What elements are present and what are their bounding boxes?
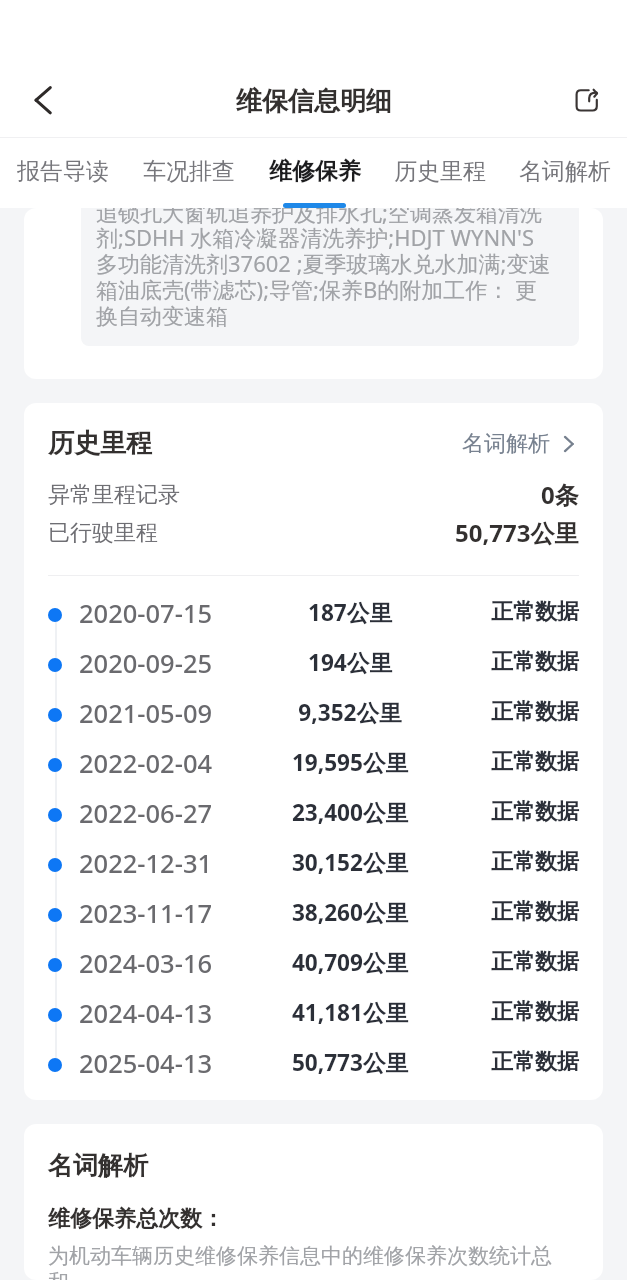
staticText: 车况排查: [143, 157, 235, 186]
staticText: 维修保养: [269, 157, 361, 186]
staticText: 2024-03-16: [79, 946, 213, 981]
staticText: 2022-02-04: [79, 746, 213, 781]
staticText: 2022-06-27: [79, 796, 213, 831]
staticText: 0条: [541, 478, 579, 511]
staticText: 2022-12-31: [79, 846, 213, 881]
staticText: 正常数据: [491, 798, 579, 826]
staticText: 2020-07-15: [79, 596, 213, 631]
staticText: 2025-04-13: [79, 1046, 213, 1081]
staticText: 正常数据: [491, 1048, 579, 1076]
staticText: 正常数据: [491, 748, 579, 776]
button[interactable]: 报告导读: [0, 138, 126, 208]
staticText: 维保信息明细: [236, 85, 392, 118]
staticText: 名词解析: [462, 430, 550, 458]
staticText: 正常数据: [491, 598, 579, 626]
staticText: 正常数据: [491, 848, 579, 876]
staticText: 194公里: [240, 647, 460, 678]
staticText: 正常数据: [491, 898, 579, 926]
staticText: 2024-04-13: [79, 996, 213, 1031]
staticText: 50,773公里: [240, 1047, 460, 1078]
staticText: 41,181公里: [240, 997, 460, 1028]
staticText: 名词解析: [48, 1150, 148, 1181]
staticText: 2023-11-17: [79, 896, 213, 931]
staticText: 正常数据: [491, 998, 579, 1026]
staticText: 40,709公里: [240, 947, 460, 978]
staticText: 名词解析: [519, 157, 611, 186]
button[interactable]: 维修保养: [252, 138, 377, 208]
staticText: 2021-05-09: [79, 696, 213, 731]
staticText: 追锁孔大窗轨追养护及排水孔;空调蒸发箱清洗剂;SDHH 水箱冷凝器清洗养护;HD…: [96, 208, 552, 330]
staticText: 异常里程记录: [48, 481, 180, 509]
staticText: 9,352公里: [240, 697, 460, 728]
staticText: 19,595公里: [240, 747, 460, 778]
staticText: 为机动车辆历史维修保养信息中的维修保养次数统计总和: [48, 1243, 569, 1280]
button[interactable]: 名词解析: [502, 138, 627, 208]
staticText: 历史里程: [48, 427, 152, 460]
button[interactable]: 历史里程: [377, 138, 502, 208]
staticText: 历史里程: [394, 157, 486, 186]
staticText: 38,260公里: [240, 897, 460, 928]
staticText: 正常数据: [491, 648, 579, 676]
staticText: 50,773公里: [455, 516, 579, 549]
staticText: 187公里: [240, 597, 460, 628]
button[interactable]: Share: [560, 74, 608, 122]
staticText: 正常数据: [491, 948, 579, 976]
staticText: 维修保养总次数：: [48, 1205, 224, 1233]
staticText: 报告导读: [17, 157, 109, 186]
staticText: 23,400公里: [240, 797, 460, 828]
staticText: 2020-09-25: [79, 646, 213, 681]
button[interactable]: 车况排查: [126, 138, 252, 208]
button[interactable]: 历史里程: [24, 415, 603, 472]
staticText: 30,152公里: [240, 847, 460, 878]
staticText: 正常数据: [491, 698, 579, 726]
button[interactable]: Back: [12, 76, 60, 124]
staticText: 已行驶里程: [48, 519, 158, 547]
